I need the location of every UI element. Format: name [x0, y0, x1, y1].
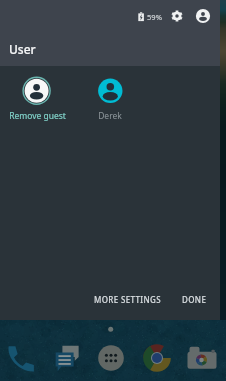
button[interactable]: Chrome [143, 344, 171, 372]
button[interactable]: Phone [7, 344, 35, 372]
button[interactable]: DONE [176, 290, 213, 308]
button[interactable]: Settings [169, 8, 185, 24]
staticText: 59% [147, 12, 162, 22]
staticText: Derek [98, 110, 122, 122]
button[interactable]: MORE SETTINGS [88, 290, 168, 308]
button[interactable]: Remove guest [8, 76, 66, 122]
button[interactable]: Account [195, 8, 211, 24]
button[interactable]: Messages [54, 344, 82, 372]
staticText: MORE SETTINGS [94, 294, 162, 305]
button[interactable]: Apps [97, 344, 125, 372]
staticText: Remove guest [9, 110, 66, 122]
staticText: DONE [182, 294, 207, 305]
staticText: User [9, 41, 36, 57]
button[interactable]: Camera [188, 344, 216, 372]
button[interactable]: Derek [86, 76, 134, 122]
